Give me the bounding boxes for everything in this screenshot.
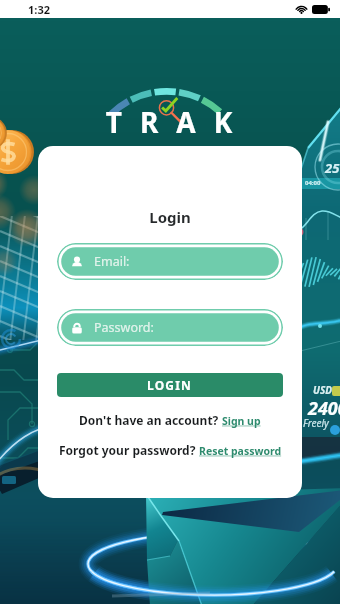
staticText: Sign up: [222, 414, 261, 428]
staticText: Password:: [94, 319, 154, 336]
button[interactable]: Password:: [57, 309, 283, 346]
button[interactable]: Email:: [57, 243, 283, 280]
staticText: Freely: [303, 416, 329, 430]
staticText: Forgot your password?: [59, 442, 199, 458]
button[interactable]: Reset password: [199, 444, 282, 458]
staticText: 1:32: [28, 2, 50, 17]
staticText: USD: [313, 383, 332, 397]
button[interactable]: Sign up: [222, 414, 261, 428]
staticText: LOGIN: [147, 377, 193, 393]
staticText: Don't have an account?: [79, 412, 222, 428]
staticText: 25: [325, 159, 340, 177]
staticText: 04:00: [305, 179, 321, 187]
staticText: TRAK: [8, 103, 340, 141]
staticText: Email:: [94, 253, 130, 270]
staticText: Login: [38, 207, 302, 227]
button[interactable]: LOGIN: [57, 373, 283, 397]
staticText: 2400: [308, 396, 340, 421]
staticText: Reset password: [199, 444, 282, 458]
